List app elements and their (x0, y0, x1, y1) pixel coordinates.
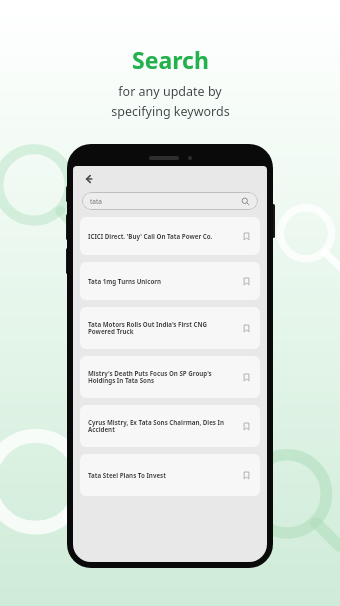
staticText: Tata Motors Rolls Out India's First CNG … (88, 320, 234, 336)
staticText: Tata 1mg Turns Unicorn (88, 277, 162, 285)
staticText: Mistry's Death Puts Focus On SP Group's … (88, 369, 234, 385)
button[interactable]: Bookmark (240, 469, 252, 481)
staticText: tata (90, 197, 102, 206)
staticText: specifying keywords (111, 103, 230, 120)
button[interactable]: Bookmark (240, 371, 252, 383)
staticText: ICICI Direct. 'Buy' Call On Tata Power C… (88, 232, 213, 240)
button[interactable]: Bookmark (240, 275, 252, 287)
button[interactable]: ICICI Direct. 'Buy' Call On Tata Power C… (80, 217, 260, 255)
button[interactable]: tata (82, 192, 258, 210)
staticText: Search (132, 44, 209, 75)
staticText: for any update by (118, 83, 222, 100)
button[interactable]: Bookmark (240, 322, 252, 334)
staticText: Tata Steel Plans To Invest (88, 471, 166, 479)
button[interactable]: Tata 1mg Turns Unicorn (80, 262, 260, 300)
button[interactable]: Cyrus Mistry, Ex Tata Sons Chairman, Die… (80, 405, 260, 447)
button[interactable]: Back (79, 169, 99, 189)
button[interactable]: Mistry's Death Puts Focus On SP Group's … (80, 356, 260, 398)
button[interactable]: Tata Motors Rolls Out India's First CNG … (80, 307, 260, 349)
button[interactable]: Tata Steel Plans To Invest (80, 454, 260, 496)
button[interactable]: Bookmark (240, 420, 252, 432)
staticText: Cyrus Mistry, Ex Tata Sons Chairman, Die… (88, 418, 234, 434)
button[interactable]: Bookmark (240, 230, 252, 242)
